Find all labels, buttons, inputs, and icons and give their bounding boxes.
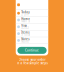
staticText: Main st <box>21 19 30 23</box>
staticText: None <box>21 40 29 43</box>
staticText: in a few simple steps <box>16 61 47 65</box>
button[interactable]: Visa <box>16 24 48 30</box>
staticText: Continue <box>25 49 39 52</box>
staticText: Today <box>21 10 29 14</box>
staticText: Home <box>21 17 30 21</box>
staticText: 4242 <box>21 26 29 30</box>
button[interactable]: Today <box>16 10 48 17</box>
button[interactable]: Continue <box>17 47 47 54</box>
staticText: Choose your order <box>18 58 45 61</box>
staticText: Items <box>21 31 29 34</box>
staticText: Visa <box>21 24 27 27</box>
staticText: 2 pm <box>21 13 28 16</box>
staticText: Notes <box>21 37 29 41</box>
button[interactable]: Notes <box>16 37 48 44</box>
staticText: 3 total <box>21 33 30 36</box>
button[interactable]: Home <box>16 17 48 24</box>
button[interactable]: Items <box>16 30 48 37</box>
